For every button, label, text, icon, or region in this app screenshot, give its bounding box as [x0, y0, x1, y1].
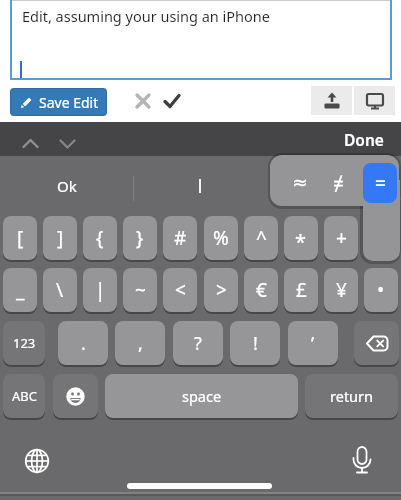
staticText: . [81, 331, 86, 356]
button[interactable]: { [83, 216, 117, 260]
button[interactable]: ~ [123, 268, 157, 312]
button[interactable]: Done [324, 122, 384, 156]
button[interactable]: Ok [0, 158, 133, 213]
staticText: } [136, 225, 144, 251]
button[interactable]: [ [3, 216, 37, 260]
button[interactable]: , [115, 321, 165, 365]
button[interactable]: space [105, 374, 298, 418]
staticText: Edit, assuming your using an iPhone [22, 6, 270, 26]
button[interactable] [18, 131, 42, 155]
button[interactable]: ^ [244, 216, 278, 260]
button[interactable] [311, 86, 352, 115]
staticText: , [138, 331, 143, 356]
button[interactable]: \ [43, 268, 77, 312]
staticText: * [295, 228, 307, 255]
staticText: { [96, 225, 104, 251]
button[interactable]: ABC [3, 374, 45, 418]
button[interactable]: > [204, 268, 238, 312]
staticText: return [330, 386, 374, 406]
staticText: ABC [12, 387, 37, 405]
staticText: Save Edit [39, 93, 99, 112]
button[interactable]: _ [3, 268, 37, 312]
button[interactable]: } [123, 216, 157, 260]
button[interactable] [55, 131, 79, 155]
button[interactable]: € [244, 268, 278, 312]
button[interactable] [354, 86, 395, 115]
staticText: space [182, 386, 222, 406]
staticText: ^ [256, 225, 267, 251]
staticText: ’ [311, 331, 315, 356]
button[interactable]: Save Edit [11, 89, 106, 115]
button[interactable] [162, 91, 182, 111]
staticText: < [175, 277, 186, 303]
button[interactable] [354, 321, 399, 365]
staticText: _ [16, 277, 25, 303]
staticText: | [95, 277, 106, 303]
staticText: ] [57, 225, 64, 251]
button[interactable]: . [58, 321, 108, 365]
staticText: Done [344, 129, 384, 150]
button[interactable]: ’ [288, 321, 338, 365]
staticText: € [256, 277, 267, 303]
button[interactable]: return [305, 374, 398, 418]
staticText: \ [56, 277, 64, 303]
staticText: [ [17, 225, 24, 251]
staticText: ¥ [336, 277, 347, 303]
staticText: £ [296, 277, 307, 303]
button[interactable]: < [163, 268, 197, 312]
staticText: + [336, 225, 347, 251]
button[interactable]: ! [230, 321, 280, 365]
staticText: # [174, 225, 187, 251]
button[interactable]: * [284, 216, 318, 260]
staticText: ? [194, 331, 202, 356]
button[interactable]: = [363, 163, 397, 203]
button[interactable]: ? [173, 321, 223, 365]
staticText: % [213, 225, 229, 251]
staticText: Ok [57, 176, 77, 196]
staticText: 123 [13, 334, 36, 352]
button[interactable]: ] [43, 216, 77, 260]
staticText: ! [253, 331, 258, 356]
button[interactable] [53, 374, 98, 418]
button[interactable]: ¥ [324, 268, 358, 312]
button[interactable] [133, 158, 267, 213]
button[interactable]: 123 [3, 321, 45, 365]
staticText: > [216, 277, 227, 303]
staticText: ≠ [333, 171, 344, 197]
button[interactable]: # [163, 216, 197, 260]
staticText: • [377, 277, 385, 303]
button[interactable] [133, 91, 153, 111]
button[interactable]: + [324, 216, 358, 260]
staticText: ≈ [292, 171, 308, 193]
button[interactable]: | [83, 268, 117, 312]
button[interactable]: £ [284, 268, 318, 312]
button[interactable] [347, 444, 377, 476]
button[interactable]: % [204, 216, 238, 260]
button[interactable] [10, 0, 392, 80]
button[interactable] [22, 446, 52, 476]
staticText: = [375, 170, 386, 196]
button[interactable]: • [364, 268, 398, 312]
staticText: ~ [135, 277, 146, 303]
